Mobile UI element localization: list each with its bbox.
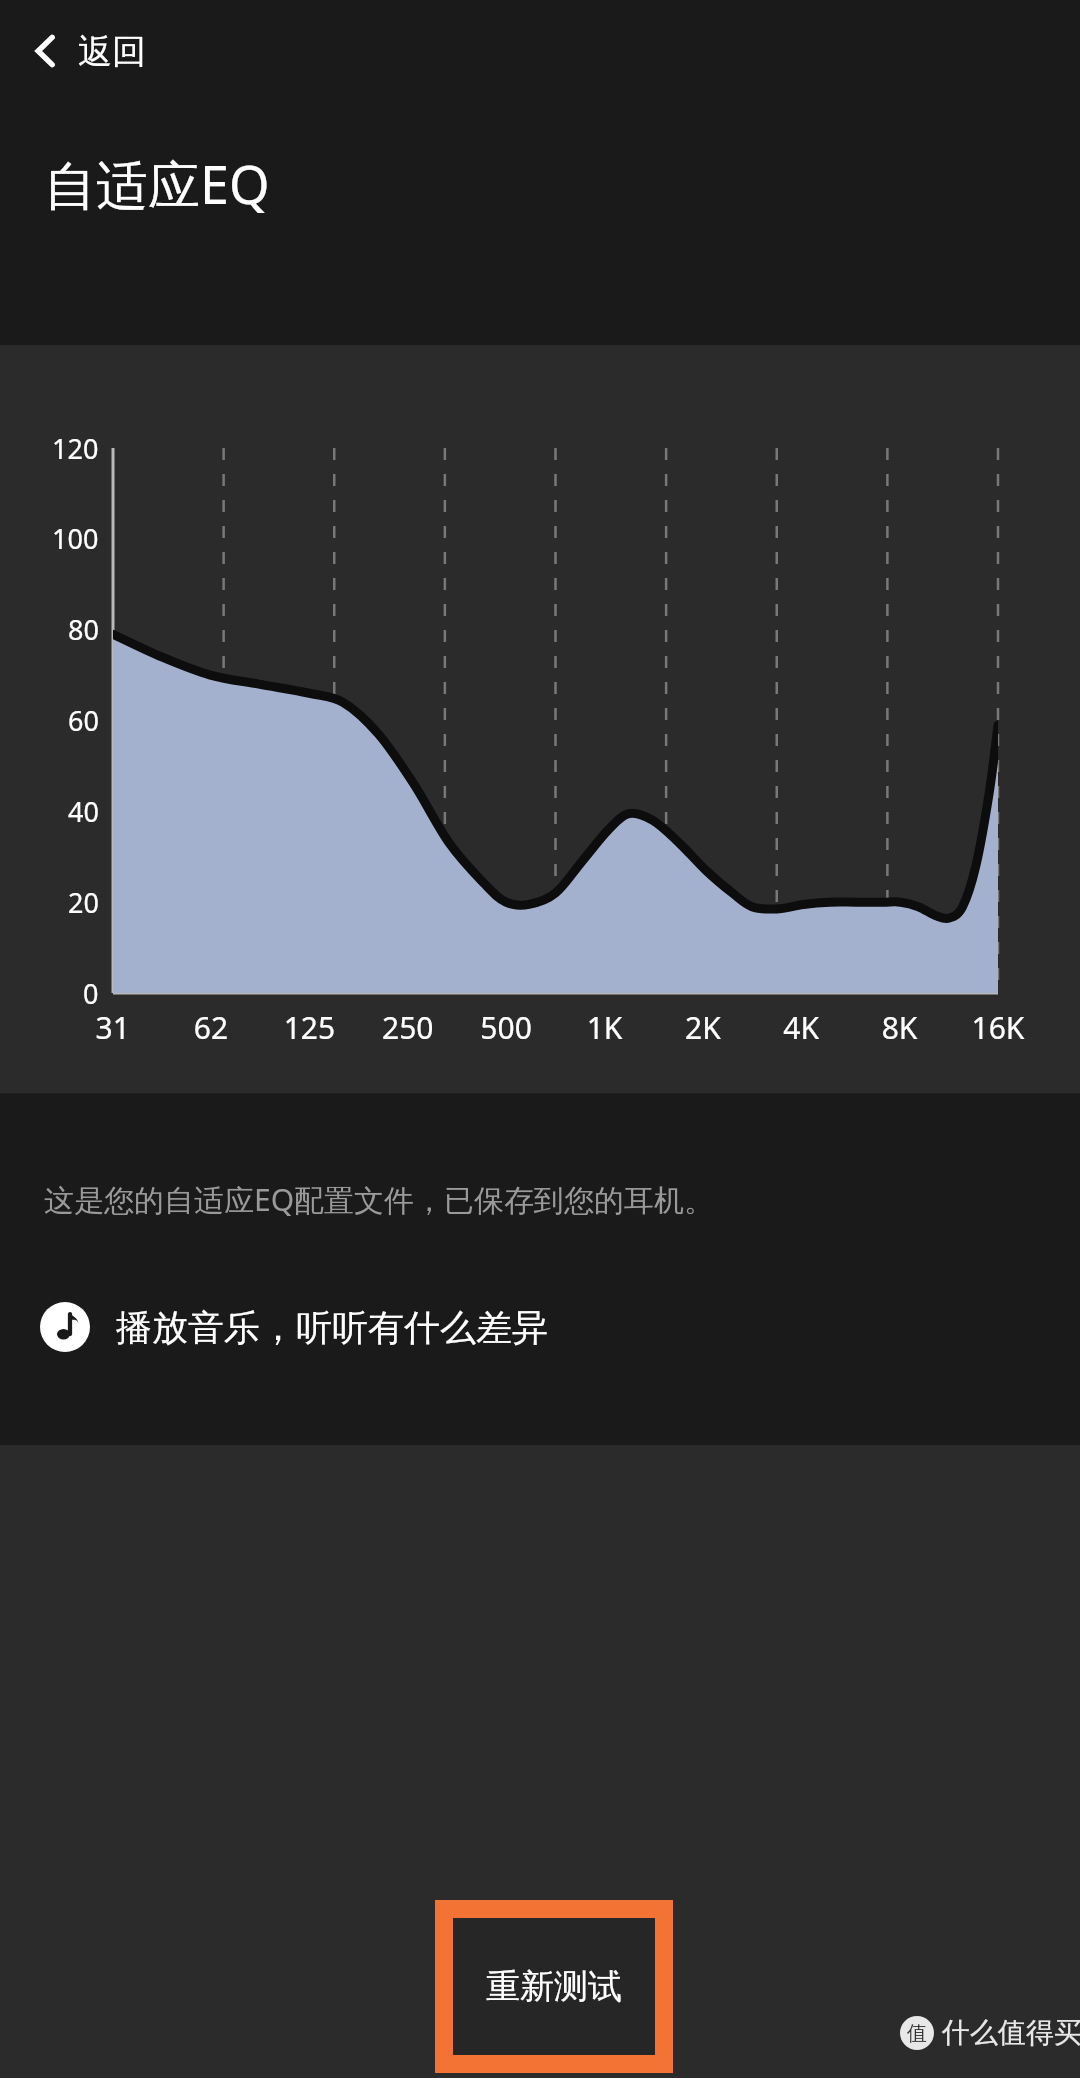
staticText: 自适应EQ (44, 148, 270, 219)
staticText: 重新测试 (486, 1965, 622, 2008)
button[interactable]: Play music (0, 1282, 1080, 1372)
staticText: 这是您的自适应EQ配置文件，已保存到您的耳机。 (44, 1179, 715, 1220)
button[interactable]: 重新测试 (435, 1900, 673, 2073)
staticText: 什么值得买 (942, 2015, 1080, 2050)
other: Play music (40, 1302, 90, 1352)
staticText: 返回 (78, 30, 146, 73)
button[interactable]: 返回 (24, 14, 164, 88)
staticText: 值 (907, 2021, 927, 2046)
staticText: 播放音乐，听听有什么差异 (116, 1305, 548, 1350)
